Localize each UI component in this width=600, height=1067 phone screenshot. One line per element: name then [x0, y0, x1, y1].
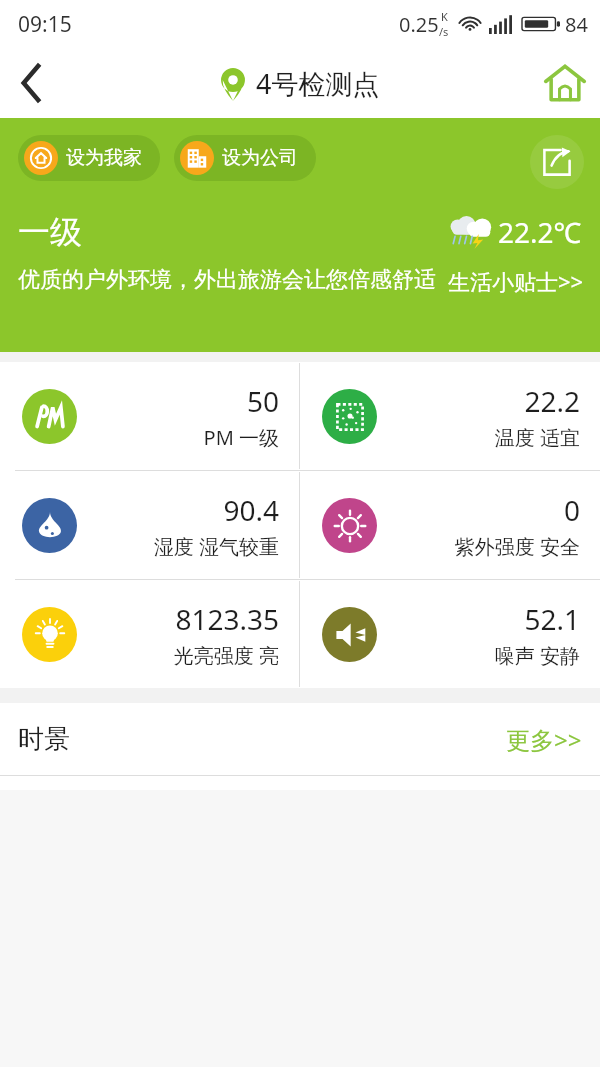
staticText: /s	[439, 24, 449, 39]
button[interactable]: 90.4	[0, 471, 299, 579]
staticText: 0.25	[399, 11, 439, 38]
staticText: 4号检测点	[256, 65, 380, 102]
button[interactable]: Back	[0, 51, 64, 115]
button[interactable]: 52.1	[300, 580, 600, 688]
staticText: 设为公司	[222, 146, 298, 170]
staticText: 时景	[18, 723, 70, 756]
button[interactable]: 50	[0, 362, 299, 470]
staticText: 一级	[18, 212, 82, 252]
staticText: 0	[563, 491, 580, 529]
staticText: 湿度 湿气较重	[153, 533, 279, 560]
staticText: 温度 适宜	[494, 424, 580, 451]
staticText: 噪声 安静	[494, 642, 580, 669]
staticText: 更多>>	[506, 723, 582, 756]
staticText: K	[441, 9, 448, 24]
staticText: PM 一级	[203, 424, 279, 451]
button[interactable]: 22.2	[300, 362, 600, 470]
button[interactable]: Home	[530, 48, 600, 118]
staticText: 50	[246, 382, 279, 420]
button[interactable]: 设为公司	[174, 135, 316, 181]
staticText: 52.1	[524, 600, 580, 638]
staticText: 90.4	[223, 491, 279, 529]
staticText: 22.2	[524, 382, 580, 420]
staticText: 紫外强度 安全	[454, 533, 580, 560]
button[interactable]: Share	[530, 135, 584, 189]
staticText: 设为我家	[66, 146, 142, 170]
button[interactable]: 0	[300, 471, 600, 579]
button[interactable]: 生活小贴士>>	[448, 266, 584, 296]
button[interactable]: 8123.35	[0, 580, 299, 688]
button[interactable]: 时景	[0, 703, 600, 775]
staticText: 8123.35	[175, 600, 279, 638]
staticText: 22.2℃	[498, 213, 582, 251]
staticText: 优质的户外环境，外出旅游会让您倍感舒适	[18, 266, 442, 294]
staticText: 光亮强度 亮	[173, 642, 279, 669]
staticText: 09:15	[18, 10, 72, 39]
button[interactable]: 设为我家	[18, 135, 160, 181]
staticText: 84	[565, 11, 588, 38]
